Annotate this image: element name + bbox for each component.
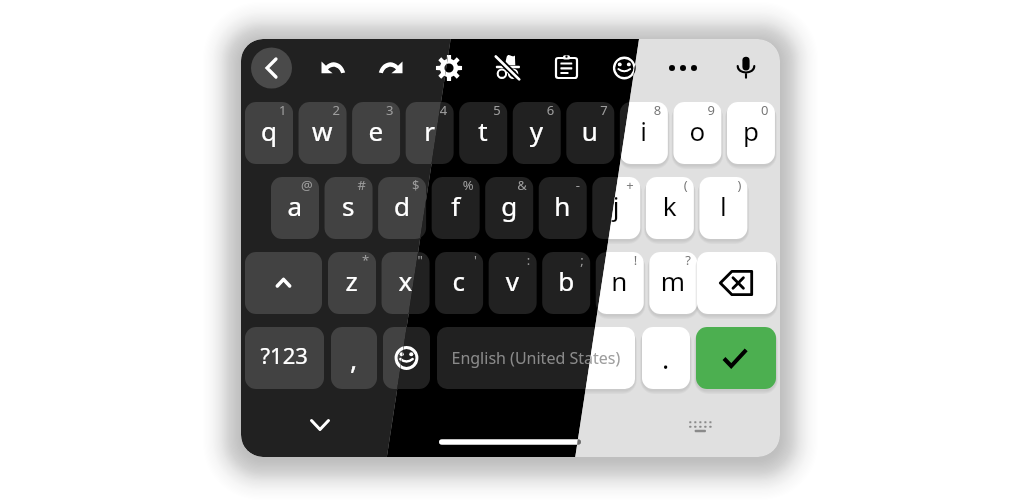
button[interactable]: v: [488, 252, 536, 314]
button[interactable]: Settings: [427, 46, 471, 90]
button[interactable]: y: [512, 102, 560, 164]
button[interactable]: Emoji: [602, 46, 646, 90]
button[interactable]: Clipboard: [544, 46, 588, 90]
button[interactable]: w: [298, 102, 346, 164]
button[interactable]: o: [673, 102, 721, 164]
button[interactable]: More options: [661, 46, 705, 90]
button[interactable]: l: [699, 177, 747, 239]
button[interactable]: Backspace: [697, 252, 776, 314]
button[interactable]: ,: [331, 327, 377, 389]
button[interactable]: Hide keyboard: [298, 403, 342, 447]
button[interactable]: c: [435, 252, 483, 314]
button[interactable]: e: [352, 102, 400, 164]
button[interactable]: a: [271, 177, 319, 239]
button[interactable]: n: [595, 252, 643, 314]
button[interactable]: x: [381, 252, 429, 314]
button[interactable]: d: [378, 177, 426, 239]
button[interactable]: f: [431, 177, 479, 239]
button[interactable]: Redo: [369, 46, 413, 90]
button[interactable]: u: [566, 102, 614, 164]
button[interactable]: Incognito off: [485, 46, 529, 90]
button[interactable]: m: [649, 252, 697, 314]
button[interactable]: k: [645, 177, 693, 239]
button[interactable]: q: [245, 102, 293, 164]
button[interactable]: p: [726, 102, 774, 164]
button[interactable]: .: [642, 327, 690, 389]
button[interactable]: Enter: [696, 327, 776, 389]
button[interactable]: Emoji: [383, 327, 430, 389]
button[interactable]: t: [459, 102, 507, 164]
button[interactable]: Space, English (United States): [437, 327, 635, 389]
button[interactable]: b: [542, 252, 590, 314]
button[interactable]: Back: [249, 46, 293, 90]
button[interactable]: Undo: [311, 46, 355, 90]
button[interactable]: s: [324, 177, 372, 239]
button[interactable]: z: [328, 252, 376, 314]
button[interactable]: ?123: [245, 327, 324, 389]
button[interactable]: Shift: [245, 252, 322, 314]
button[interactable]: Voice input: [724, 46, 768, 90]
button[interactable]: r: [405, 102, 453, 164]
button[interactable]: Switch keyboard: [678, 404, 722, 448]
button[interactable]: i: [619, 102, 667, 164]
button[interactable]: h: [538, 177, 586, 239]
button[interactable]: j: [592, 177, 640, 239]
button[interactable]: g: [485, 177, 533, 239]
